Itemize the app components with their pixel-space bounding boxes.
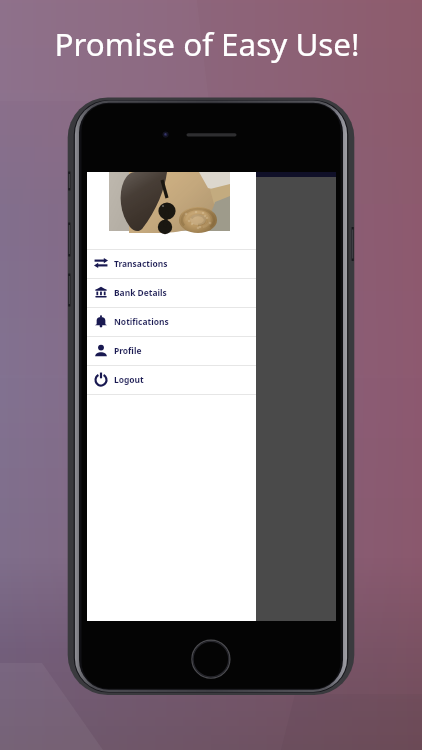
staticText: Transactions (114, 258, 168, 270)
staticText: Bank Details (114, 287, 167, 299)
button[interactable]: Transactions (87, 250, 256, 278)
staticText: Notifications (114, 316, 169, 328)
staticText: Profile (114, 345, 142, 357)
staticText: Logout (114, 374, 144, 386)
button[interactable]: Notifications (87, 308, 256, 336)
button[interactable]: Profile (87, 337, 256, 365)
button[interactable]: Bank Details (87, 279, 256, 307)
button[interactable]: Logout (87, 366, 256, 394)
staticText: Promise of Easy Use! (0, 22, 418, 65)
